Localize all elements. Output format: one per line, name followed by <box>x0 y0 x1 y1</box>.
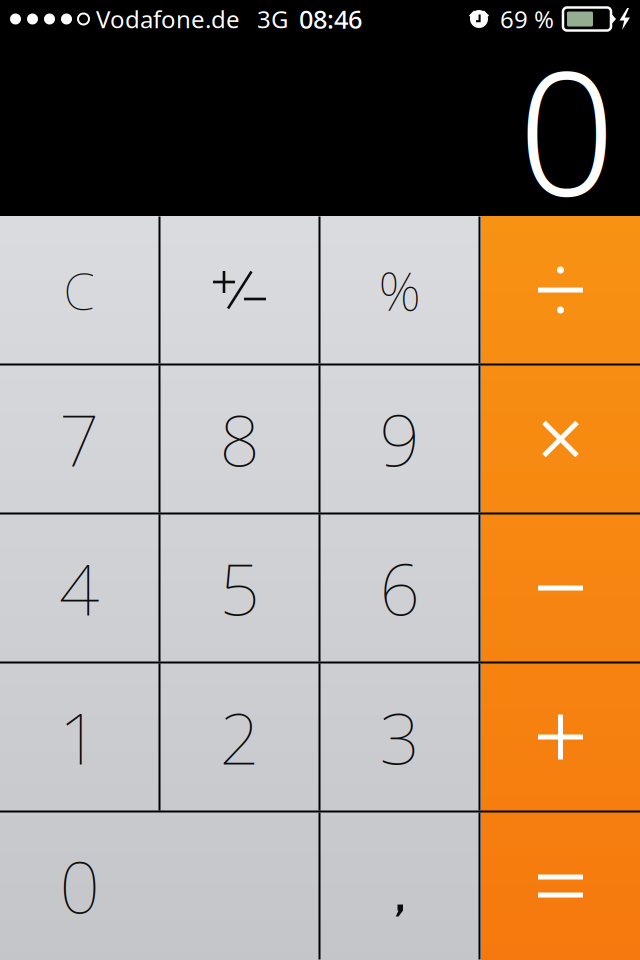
button[interactable]: 9 <box>320 365 478 512</box>
staticText: 9 <box>379 392 419 486</box>
staticText: 1 <box>59 690 99 784</box>
staticText: 7 <box>59 392 99 486</box>
button[interactable]: Plus <box>480 663 640 810</box>
button[interactable]: Multiply <box>480 365 640 512</box>
button[interactable]: Minus <box>480 514 640 661</box>
button[interactable]: % <box>320 216 478 363</box>
staticText: 5 <box>219 541 259 635</box>
button[interactable]: 5 <box>160 514 318 661</box>
button[interactable]: 6 <box>320 514 478 661</box>
button[interactable]: C <box>0 216 158 363</box>
button[interactable]: 8 <box>160 365 318 512</box>
staticText: C <box>63 256 94 324</box>
staticText: 0 <box>59 839 99 933</box>
staticText: 4 <box>59 541 99 635</box>
staticText: 2 <box>219 690 259 784</box>
staticText: 8 <box>219 392 259 486</box>
button[interactable]: Equals <box>480 812 640 959</box>
staticText: 6 <box>379 541 419 635</box>
button[interactable]: Toggle sign <box>160 216 318 363</box>
button[interactable]: Decimal separator <box>320 812 478 959</box>
staticText: 08:46 <box>299 2 362 36</box>
button[interactable]: 4 <box>0 514 158 661</box>
staticText: 0 <box>518 16 615 242</box>
staticText: 69 % <box>500 3 554 35</box>
button[interactable]: 3 <box>320 663 478 810</box>
staticText: 3 <box>379 690 419 784</box>
button[interactable]: 0 <box>0 812 318 959</box>
button[interactable]: Divide <box>480 216 640 363</box>
button[interactable]: 1 <box>0 663 158 810</box>
staticText: % <box>378 255 420 325</box>
button[interactable]: 7 <box>0 365 158 512</box>
button[interactable]: 2 <box>160 663 318 810</box>
staticText: 3G <box>257 3 288 35</box>
staticText: Vodafone.de <box>96 3 240 35</box>
